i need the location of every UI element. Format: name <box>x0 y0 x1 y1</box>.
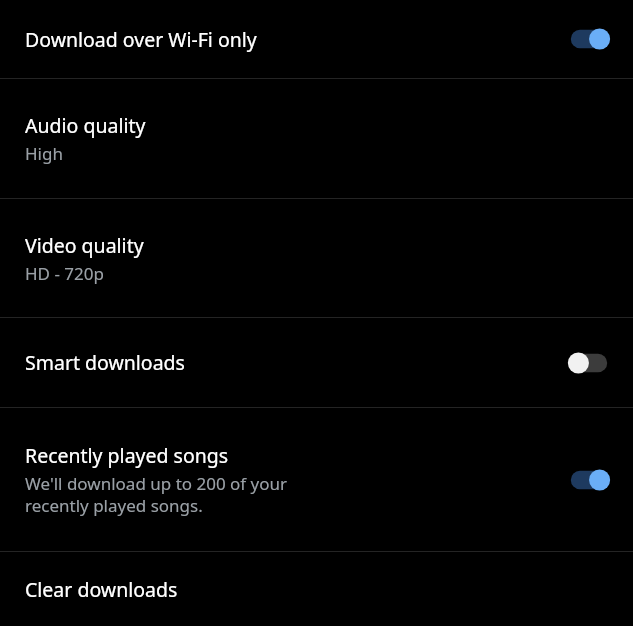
staticText: Audio quality <box>25 112 146 139</box>
staticText: Download over Wi-Fi only <box>25 26 257 53</box>
staticText: Clear downloads <box>25 576 178 603</box>
button[interactable]: Clear downloads <box>0 552 633 626</box>
button[interactable]: Download over Wi-Fi only toggle, on <box>563 22 615 56</box>
button[interactable]: Smart downloads toggle, off <box>563 346 615 380</box>
staticText: Video quality <box>25 232 144 259</box>
button[interactable]: Smart downloads <box>0 318 633 407</box>
button[interactable]: Audio quality <box>0 79 633 198</box>
staticText: High <box>25 142 615 165</box>
button[interactable]: Download over Wi-Fi only <box>0 0 633 78</box>
button[interactable]: Video quality <box>0 199 633 317</box>
button[interactable]: Recently played songs toggle, on <box>563 463 615 497</box>
staticText: Recently played songs <box>25 442 229 469</box>
button[interactable]: Recently played songs <box>0 408 633 551</box>
staticText: We'll download up to 200 of your recentl… <box>25 472 325 517</box>
staticText: HD - 720p <box>25 262 615 285</box>
staticText: Smart downloads <box>25 349 185 376</box>
